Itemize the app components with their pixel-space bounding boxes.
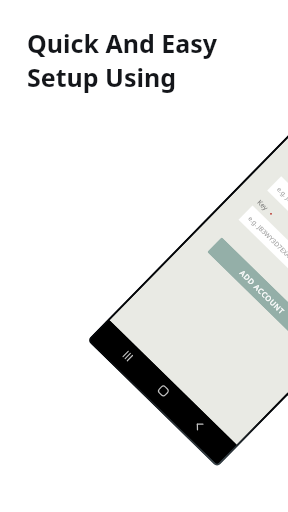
staticText: Setup Using [27,60,177,94]
staticText: Key [255,198,270,213]
staticText: ADD ACCOUNT [238,268,287,316]
button[interactable]: ADD ACCOUNT [207,237,288,346]
button[interactable]: e.g. JB3WY3D7EXAMPLE [238,205,288,313]
button[interactable]: e.g. John [267,176,288,284]
staticText: Quick And Easy [27,26,218,60]
staticText: e.g. JB3WY3D7EXAMPLE [246,214,288,271]
staticText: e.g. John [275,185,288,210]
